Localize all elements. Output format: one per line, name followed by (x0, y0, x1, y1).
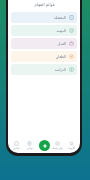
button[interactable]: مهامي (23, 138, 36, 152)
staticText: المهمة (56, 29, 66, 33)
button[interactable]: الطعام (11, 51, 77, 62)
button[interactable]: إضافة (39, 140, 50, 151)
staticText: قوائم المهام (34, 2, 55, 7)
button[interactable]: التنبيهات (64, 138, 78, 152)
button[interactable]: مهام مكتملة (50, 138, 64, 152)
staticText: الدراسة (54, 68, 66, 72)
button[interactable]: العمل (11, 38, 77, 49)
staticText: مهام مكتملة (52, 147, 63, 150)
staticText: العمل (57, 42, 66, 46)
staticText: مهامي (27, 147, 33, 150)
staticText: الطعام (56, 55, 66, 59)
staticText: المفضلة (54, 16, 66, 20)
button[interactable]: المهمة (11, 25, 77, 36)
staticText: قوائمي (13, 147, 20, 150)
button[interactable]: المفضلة (11, 12, 77, 23)
staticText: التنبيهات (67, 147, 75, 150)
button[interactable]: قوائمي (10, 138, 23, 152)
button[interactable]: الدراسة (11, 64, 77, 75)
